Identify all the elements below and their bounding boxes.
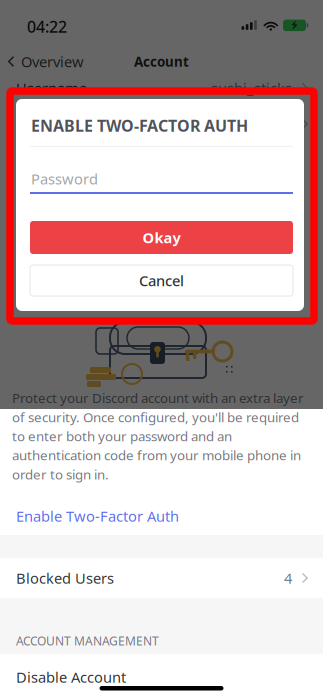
staticText: Disable Account xyxy=(16,667,126,687)
button[interactable]: Username xyxy=(0,70,323,106)
staticText: Overview xyxy=(21,52,84,71)
staticText: Enable Two-Factor Auth xyxy=(16,506,179,526)
staticText: 04:22 xyxy=(27,16,67,37)
staticText: Password xyxy=(31,169,98,188)
staticText: sushi_sticks xyxy=(211,78,292,98)
staticText: 4 xyxy=(284,568,292,588)
button[interactable]: Disable Account xyxy=(0,654,323,700)
staticText: s•••••@gmail.com xyxy=(169,114,292,134)
staticText: ACCOUNT MANAGEMENT xyxy=(16,633,159,649)
button[interactable]: Enable Two-Factor Auth xyxy=(0,499,195,533)
staticText: ENABLE TWO-FACTOR AUTH xyxy=(31,115,248,136)
button[interactable]: Cancel xyxy=(30,265,293,296)
button[interactable]: Back to Overview xyxy=(0,46,94,77)
staticText: Account xyxy=(134,53,189,70)
staticText: Email xyxy=(16,114,54,134)
staticText: Username xyxy=(16,78,87,98)
button[interactable]: Blocked Users xyxy=(0,558,323,598)
staticText: Cancel xyxy=(139,271,184,290)
button[interactable]: Email xyxy=(0,106,323,142)
button[interactable]: Okay xyxy=(30,221,293,254)
staticText: Protect your Discord account with an ext… xyxy=(12,389,304,483)
staticText: Okay xyxy=(142,228,180,247)
staticText: Blocked Users xyxy=(16,568,114,588)
